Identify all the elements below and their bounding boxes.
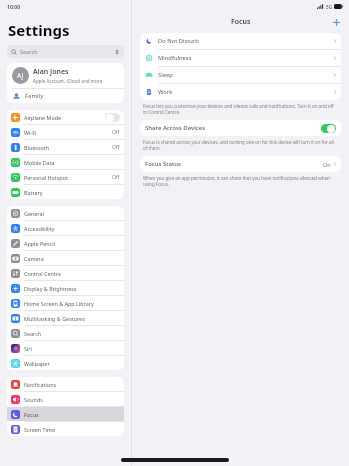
button[interactable]: Accessibility bbox=[7, 221, 124, 235]
button[interactable]: Search bbox=[7, 45, 124, 58]
button[interactable]: Airplane Mode bbox=[7, 110, 124, 124]
button[interactable]: Screen Time bbox=[7, 422, 124, 436]
staticText: Display & Brightness bbox=[24, 285, 77, 292]
staticText: Siri bbox=[24, 345, 32, 352]
button[interactable]: Family bbox=[7, 89, 124, 103]
staticText: 5G bbox=[326, 4, 332, 10]
staticText: Control Centre bbox=[24, 270, 62, 277]
button[interactable]: Personal Hotspot bbox=[7, 170, 124, 184]
staticText: Home Screen & App Library bbox=[24, 300, 94, 307]
staticText: Sleep bbox=[158, 71, 173, 79]
staticText: Share Across Devices bbox=[145, 124, 206, 132]
staticText: Family bbox=[25, 92, 44, 100]
staticText: 10:00 bbox=[7, 3, 21, 10]
staticText: Apple Pencil bbox=[24, 240, 55, 247]
staticText: Wi-Fi bbox=[24, 129, 37, 136]
button[interactable]: Home Screen & App Library bbox=[7, 296, 124, 310]
button[interactable]: Add Focus bbox=[329, 15, 343, 29]
staticText: Settings bbox=[8, 20, 70, 40]
button[interactable]: Siri bbox=[7, 341, 124, 355]
button[interactable]: Camera bbox=[7, 251, 124, 265]
staticText: Mobile Data bbox=[24, 159, 55, 166]
button[interactable] bbox=[321, 124, 336, 133]
button[interactable]: Focus Status bbox=[140, 156, 341, 172]
button[interactable]: Sleep bbox=[140, 67, 341, 83]
staticText: Search bbox=[20, 48, 38, 56]
staticText: Sounds bbox=[24, 396, 43, 403]
button[interactable]: Wallpaper bbox=[7, 356, 124, 370]
staticText: Focus is shared across your devices, and… bbox=[143, 139, 335, 151]
button[interactable]: Sounds bbox=[7, 392, 124, 406]
button[interactable]: Do Not Disturb bbox=[140, 33, 341, 49]
button[interactable]: Multitasking & Gestures bbox=[7, 311, 124, 325]
button[interactable] bbox=[105, 113, 120, 122]
staticText: Airplane Mode bbox=[24, 114, 62, 121]
button[interactable]: Work bbox=[140, 84, 341, 100]
staticText: When you give an app permission, it can … bbox=[143, 175, 335, 187]
staticText: AJ bbox=[17, 71, 24, 80]
button[interactable]: Control Centre bbox=[7, 266, 124, 280]
button[interactable]: Battery bbox=[7, 185, 124, 199]
button[interactable]: Display & Brightness bbox=[7, 281, 124, 295]
button[interactable]: Apple Pencil bbox=[7, 236, 124, 250]
staticText: Focus bbox=[24, 411, 39, 418]
staticText: Off bbox=[112, 174, 120, 181]
button[interactable]: Mindfulness bbox=[140, 50, 341, 66]
staticText: Camera bbox=[24, 255, 44, 262]
button[interactable]: Bluetooth bbox=[7, 140, 124, 154]
staticText: Focus bbox=[231, 17, 251, 27]
staticText: Apple Account, iCloud and more bbox=[33, 78, 103, 84]
staticText: Accessibility bbox=[24, 225, 55, 232]
button[interactable]: AJ bbox=[7, 63, 124, 88]
staticText: Do Not Disturb bbox=[158, 37, 199, 45]
staticText: Focus lets you customise your devices an… bbox=[143, 103, 335, 115]
staticText: Off bbox=[112, 144, 120, 151]
staticText: Focus Status bbox=[145, 160, 182, 168]
staticText: Work bbox=[158, 88, 173, 96]
staticText: Off bbox=[112, 129, 120, 136]
staticText: On bbox=[323, 161, 331, 168]
staticText: Search bbox=[24, 330, 42, 337]
button[interactable]: Wi-Fi bbox=[7, 125, 124, 139]
staticText: Battery bbox=[24, 189, 43, 196]
button[interactable]: Focus bbox=[7, 407, 124, 421]
button[interactable]: Mobile Data bbox=[7, 155, 124, 169]
staticText: Personal Hotspot bbox=[24, 174, 68, 181]
staticText: Bluetooth bbox=[24, 144, 50, 151]
staticText: Multitasking & Gestures bbox=[24, 315, 85, 322]
staticText: Wallpaper bbox=[24, 360, 50, 367]
staticText: Alan Jones bbox=[33, 67, 69, 77]
staticText: Screen Time bbox=[24, 426, 55, 433]
staticText: Mindfulness bbox=[158, 54, 192, 62]
staticText: Notifications bbox=[24, 381, 57, 388]
button[interactable]: Share Across Devices bbox=[140, 120, 341, 136]
button[interactable]: General bbox=[7, 206, 124, 220]
staticText: General bbox=[24, 210, 44, 217]
button[interactable]: Notifications bbox=[7, 377, 124, 391]
button[interactable]: Search bbox=[7, 326, 124, 340]
